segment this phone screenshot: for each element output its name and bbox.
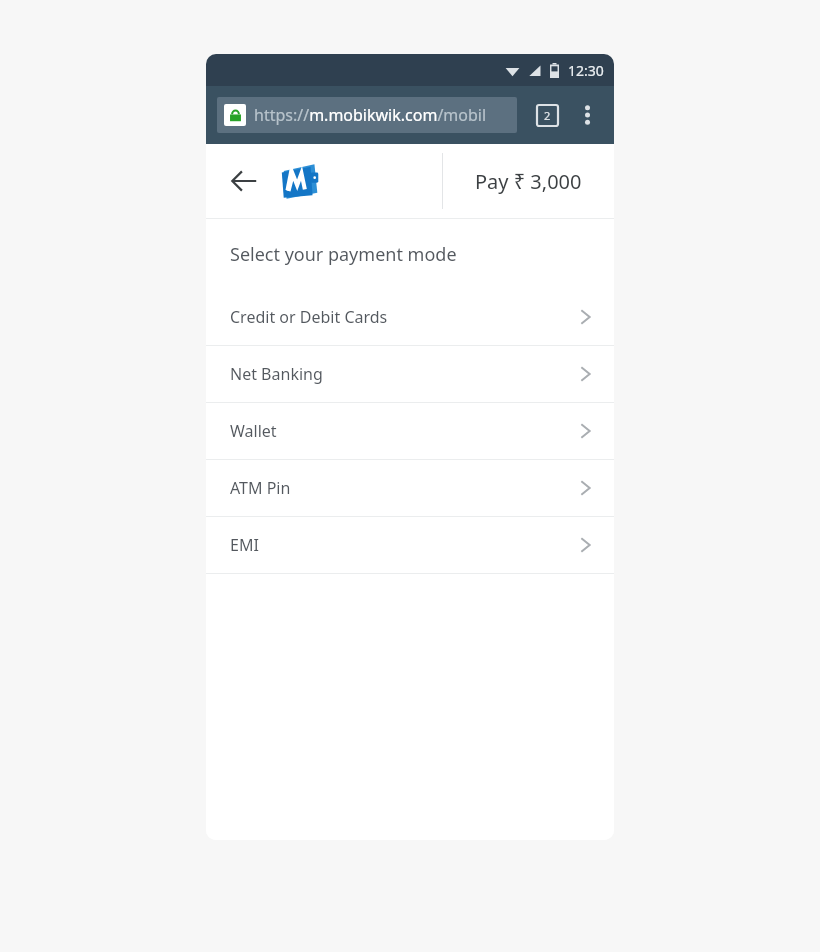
button[interactable]: Credit or Debit Cards xyxy=(206,289,614,345)
button[interactable]: Tabs, 2 open xyxy=(531,99,563,131)
button[interactable]: EMI xyxy=(206,517,614,573)
staticText: Select your payment mode xyxy=(230,242,457,267)
staticText: ATM Pin xyxy=(230,477,291,499)
staticText: EMI xyxy=(230,534,259,556)
staticText: Wallet xyxy=(230,420,277,442)
button[interactable]: Back xyxy=(220,157,268,205)
button[interactable]: Wallet xyxy=(206,403,614,459)
staticText: 2 xyxy=(544,108,551,123)
button[interactable]: ATM Pin xyxy=(206,460,614,516)
staticText: Net Banking xyxy=(230,363,323,385)
staticText: Pay ₹ 3,000 xyxy=(475,168,582,195)
staticText: https://m.mobikwik.com/mobil xyxy=(254,104,487,126)
staticText: 12:30 xyxy=(568,61,604,80)
button[interactable]: https://m.mobikwik.com/mobil xyxy=(217,97,517,133)
staticText: Credit or Debit Cards xyxy=(230,306,388,328)
button[interactable]: More options xyxy=(571,99,603,131)
button[interactable]: Net Banking xyxy=(206,346,614,402)
